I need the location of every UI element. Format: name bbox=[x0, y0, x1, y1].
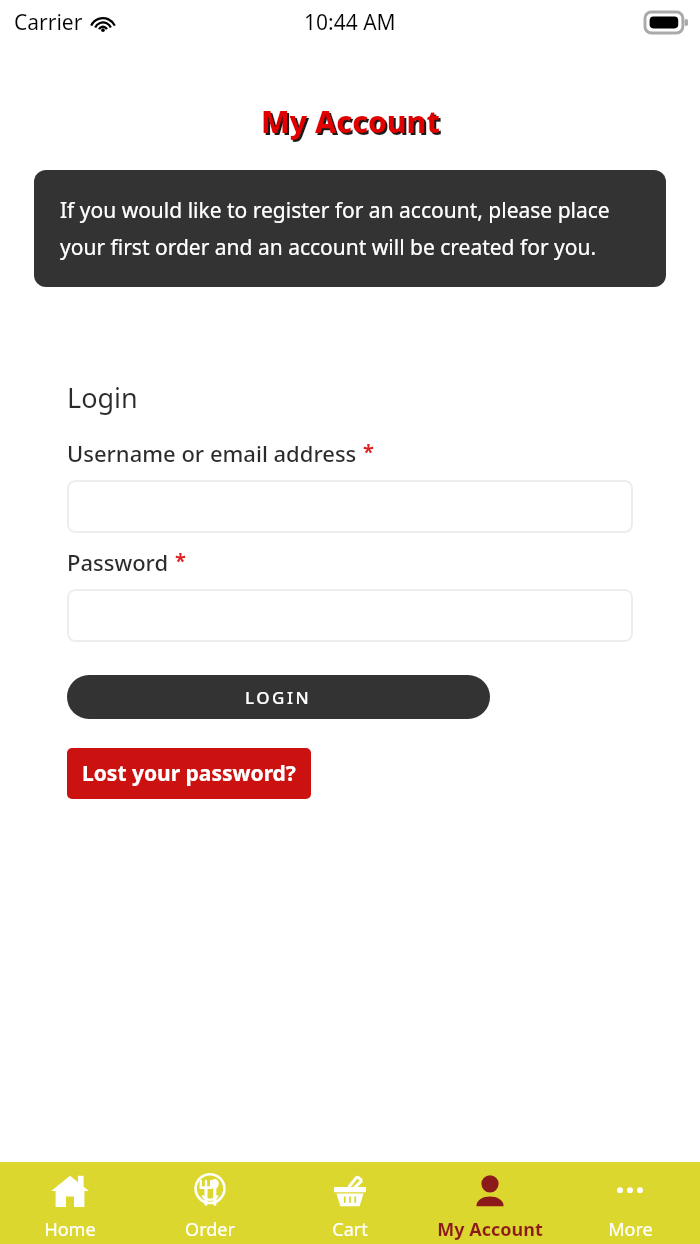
button[interactable]: My Account bbox=[420, 1162, 560, 1244]
staticText: My Account bbox=[437, 1217, 543, 1242]
staticText: Login bbox=[67, 379, 138, 416]
staticText: My Account bbox=[261, 101, 440, 142]
button[interactable] bbox=[67, 480, 633, 533]
staticText: Order bbox=[185, 1217, 235, 1242]
staticText: My Account bbox=[263, 103, 442, 144]
button[interactable]: Cart bbox=[280, 1162, 420, 1244]
staticText: LOGIN bbox=[245, 686, 312, 709]
staticText: Username or email address bbox=[67, 438, 357, 468]
staticText: If you would like to register for an acc… bbox=[60, 196, 640, 261]
button[interactable]: Home bbox=[0, 1162, 140, 1244]
staticText: Carrier bbox=[14, 8, 83, 37]
staticText: * bbox=[363, 438, 374, 465]
staticText: 10:44 AM bbox=[304, 8, 396, 37]
staticText: Home bbox=[44, 1217, 96, 1242]
button[interactable]: Order bbox=[140, 1162, 280, 1244]
staticText: Cart bbox=[332, 1217, 368, 1242]
staticText: More bbox=[608, 1217, 653, 1242]
staticText: * bbox=[175, 547, 186, 574]
button[interactable]: LOGIN bbox=[67, 675, 490, 719]
staticText: Lost your password? bbox=[82, 759, 296, 788]
button[interactable]: Lost your password? bbox=[67, 748, 311, 799]
staticText: Password bbox=[67, 547, 169, 577]
button[interactable] bbox=[67, 589, 633, 642]
button[interactable]: More bbox=[560, 1162, 700, 1244]
